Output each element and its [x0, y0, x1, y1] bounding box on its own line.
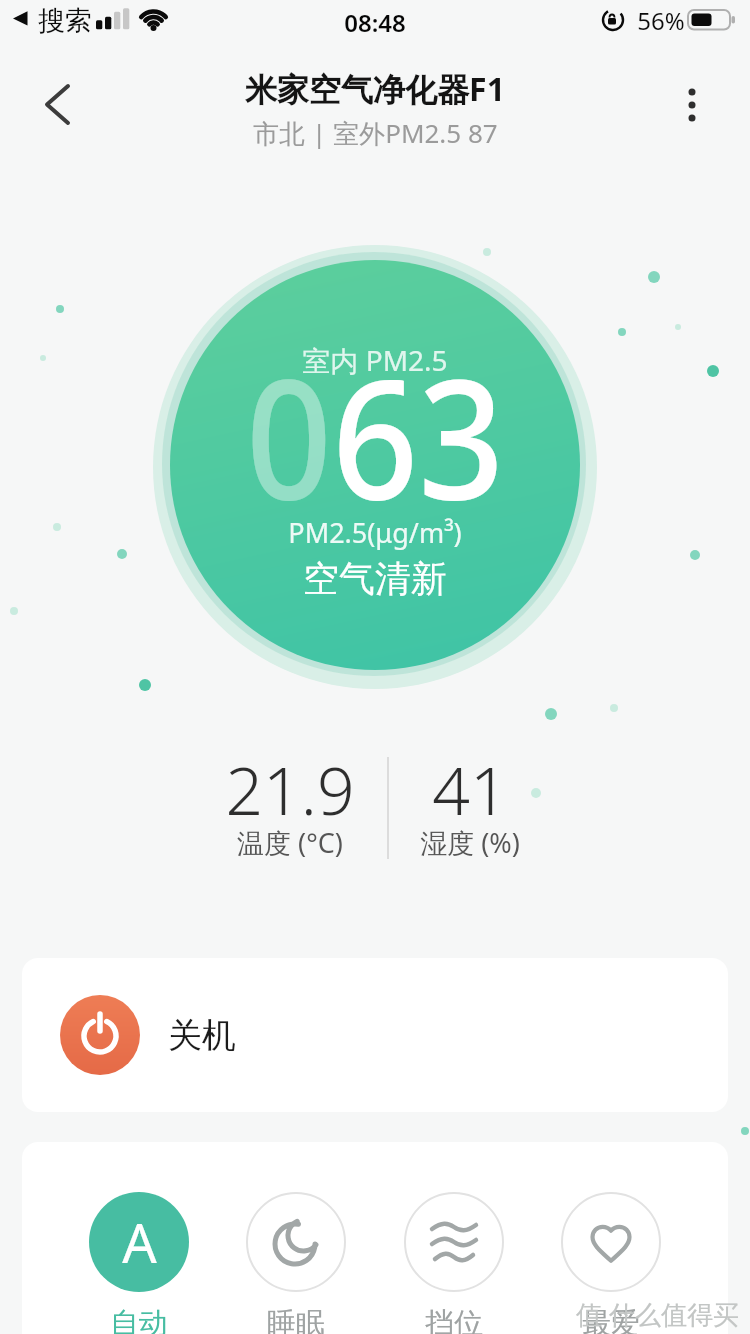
staticText: 值 什么值得买: [576, 1296, 739, 1332]
staticText: 温度 (°C): [237, 824, 343, 860]
staticText: 关机: [168, 1014, 236, 1057]
staticText: 空气清新: [303, 556, 447, 601]
staticText: 08:48: [344, 6, 406, 39]
staticText: 挡位: [425, 1305, 483, 1334]
staticText: PM2.5(μg/m³): [288, 514, 462, 551]
staticText: 21.9: [225, 744, 355, 816]
staticText: 睡眠: [267, 1305, 325, 1334]
button[interactable]: 最爱: [551, 1192, 671, 1334]
staticText: 0: [246, 323, 332, 548]
staticText: 63: [332, 323, 504, 548]
button[interactable]: 睡眠: [236, 1192, 356, 1334]
staticText: 市北 | 室外PM2.5 87: [253, 115, 498, 151]
button[interactable]: 挡位: [394, 1192, 514, 1334]
staticText: 湿度 (%): [420, 824, 520, 860]
button[interactable]: [667, 80, 717, 130]
staticText: 米家空气净化器F1: [245, 67, 505, 111]
staticText: 56%: [637, 4, 685, 37]
button[interactable]: [30, 80, 80, 130]
staticText: 41: [432, 744, 508, 816]
button[interactable]: 关机: [22, 958, 728, 1112]
staticText: 最爱: [582, 1305, 640, 1334]
staticText: 自动: [110, 1305, 168, 1334]
staticText: 室内 PM2.5: [302, 341, 448, 379]
staticText: 搜索: [38, 4, 92, 38]
staticText: A: [122, 1205, 157, 1279]
button[interactable]: A: [79, 1192, 199, 1334]
